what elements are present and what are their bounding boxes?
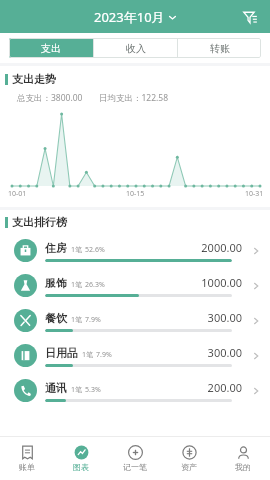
staticText: 1000.00	[201, 275, 242, 290]
button[interactable]: 记一笔	[108, 436, 162, 480]
staticText: 支出排行榜	[12, 215, 67, 229]
button[interactable]: 资产	[162, 436, 216, 480]
staticText: 10-31	[245, 189, 264, 199]
button[interactable]: 日用品	[0, 338, 270, 373]
staticText: 收入	[126, 42, 146, 55]
staticText: 2000.00	[201, 240, 242, 255]
staticText: 支出走势	[12, 72, 56, 86]
button[interactable]: Filter	[239, 6, 261, 28]
staticText: 7.9%	[96, 350, 112, 360]
staticText: 1笔	[71, 245, 83, 255]
staticText: 1笔	[71, 315, 83, 325]
button[interactable]: 餐饮	[0, 303, 270, 338]
staticText: 5.3%	[85, 385, 101, 395]
staticText: 总支出：3800.00	[17, 92, 83, 104]
button[interactable]: 账单	[0, 436, 54, 480]
staticText: 转账	[210, 42, 230, 55]
staticText: 1笔	[71, 280, 83, 290]
staticText: 10-01	[8, 189, 27, 199]
staticText: 7.9%	[85, 315, 101, 325]
staticText: 日均支出：122.58	[99, 92, 169, 104]
staticText: 52.6%	[85, 245, 105, 255]
staticText: 26.3%	[85, 280, 105, 290]
staticText: 住房	[45, 241, 67, 255]
staticText: 300.00	[207, 345, 242, 360]
staticText: 1笔	[71, 385, 83, 395]
staticText: 记一笔	[123, 462, 147, 472]
staticText: 图表	[73, 462, 89, 472]
button[interactable]: 收入	[94, 38, 177, 58]
staticText: 200.00	[207, 380, 242, 395]
button[interactable]: 2023年10月	[88, 6, 183, 28]
button[interactable]: 住房	[0, 233, 270, 268]
staticText: 资产	[181, 462, 197, 472]
staticText: 餐饮	[45, 311, 67, 325]
staticText: 300.00	[207, 310, 242, 325]
staticText: 通讯	[45, 381, 67, 395]
button[interactable]: 服饰	[0, 268, 270, 303]
button[interactable]: 支出	[9, 38, 93, 58]
staticText: 服饰	[45, 276, 67, 290]
button[interactable]: 我的	[216, 436, 270, 480]
staticText: 账单	[19, 462, 35, 472]
staticText: 支出	[41, 42, 61, 55]
staticText: 我的	[235, 462, 251, 472]
button[interactable]: 转账	[178, 38, 261, 58]
button[interactable]: 图表	[54, 436, 108, 480]
staticText: 2023年10月	[94, 8, 165, 26]
staticText: 1笔	[82, 350, 94, 360]
staticText: 10-15	[126, 189, 145, 199]
staticText: 日用品	[45, 346, 78, 360]
button[interactable]: 通讯	[0, 373, 270, 408]
